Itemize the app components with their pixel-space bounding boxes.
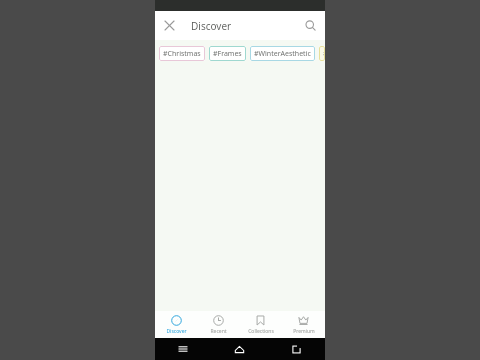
staticText: Recent — [210, 328, 227, 335]
button[interactable]: Recent — [197, 311, 239, 338]
staticText: #WinterAesthetic — [254, 49, 311, 59]
staticText: Discover — [191, 19, 232, 33]
button[interactable]: Menu — [155, 338, 211, 360]
button[interactable]: #Frames — [209, 46, 246, 61]
button[interactable]: #Christmas — [159, 46, 205, 61]
button[interactable]: Home — [211, 338, 268, 360]
staticText: Discover — [166, 328, 187, 335]
button[interactable]: Collections — [239, 311, 282, 338]
button[interactable]: Search — [296, 11, 325, 40]
staticText: #Christmas — [163, 49, 201, 59]
button[interactable]: Close — [155, 11, 184, 40]
button[interactable]: #WinterAesthetic — [250, 46, 315, 61]
staticText: Collections — [248, 328, 274, 335]
button[interactable]: Discover — [155, 311, 197, 338]
button[interactable]: Recents — [268, 338, 325, 360]
staticText: #Frames — [213, 49, 242, 59]
button[interactable]: Premium — [282, 311, 325, 338]
staticText: Premium — [293, 328, 315, 335]
button[interactable]: #New — [319, 46, 325, 61]
